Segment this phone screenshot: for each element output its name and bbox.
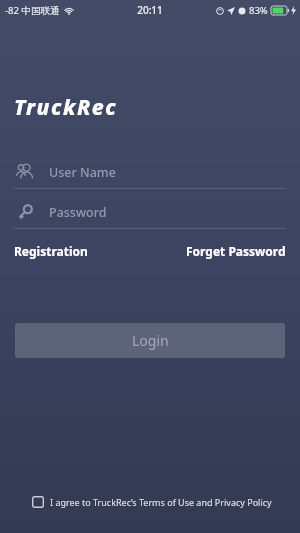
staticText: Registration (14, 243, 88, 259)
staticText: I agree to TruckRec‘s Terms of Use and P… (50, 496, 272, 508)
staticText: Login (132, 331, 169, 350)
button[interactable]: Forget Password (186, 240, 286, 262)
other: User name (15, 162, 35, 182)
staticText: Password (49, 204, 107, 221)
staticText: 83% (249, 4, 268, 17)
button[interactable]: User name (0, 156, 300, 188)
staticText: TruckRec (14, 93, 118, 122)
other: Password (15, 202, 35, 222)
staticText: 20:11 (137, 3, 163, 17)
button[interactable]: I agree to TruckRec‘s Terms of Use and P… (32, 496, 272, 508)
button[interactable]: Registration (14, 240, 88, 262)
button[interactable]: Password (0, 196, 300, 228)
staticText: Forget Password (186, 243, 286, 259)
button[interactable]: Login (15, 323, 285, 358)
staticText: -82 中国联通 (5, 4, 60, 17)
staticText: User Name (49, 164, 116, 181)
